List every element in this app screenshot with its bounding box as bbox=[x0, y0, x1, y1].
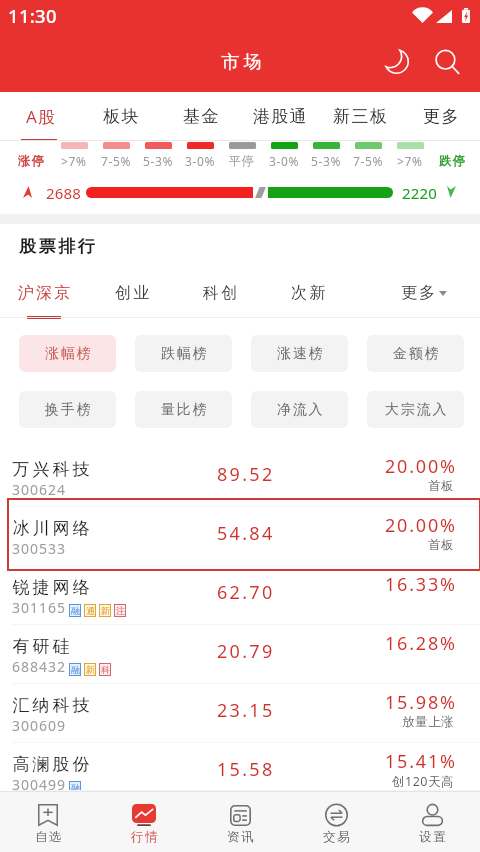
staticText: 11:30 bbox=[8, 3, 57, 28]
button[interactable]: 净流入 bbox=[251, 391, 348, 428]
staticText: 板块 bbox=[103, 106, 140, 127]
staticText: 科创 bbox=[203, 283, 240, 303]
button[interactable]: 涨幅榜 bbox=[19, 335, 116, 372]
staticText: 交易 bbox=[323, 829, 352, 845]
button[interactable]: 科创 bbox=[180, 271, 260, 315]
staticText: 高澜股份 bbox=[11, 754, 91, 775]
staticText: 行情 bbox=[131, 829, 160, 845]
button[interactable]: 冰川网络 bbox=[0, 507, 480, 566]
button[interactable]: 有研硅 bbox=[0, 625, 480, 684]
staticText: 平停 bbox=[229, 153, 255, 168]
staticText: 2688 bbox=[46, 183, 82, 203]
staticText: A股 bbox=[26, 105, 57, 128]
button[interactable]: 自选 bbox=[0, 791, 96, 852]
button[interactable]: 新三板 bbox=[320, 92, 400, 141]
staticText: 20.00% bbox=[385, 513, 457, 538]
staticText: 3-0% bbox=[269, 153, 299, 169]
staticText: 新 bbox=[86, 664, 95, 675]
staticText: 有研硅 bbox=[11, 636, 71, 657]
staticText: 汇纳科技 bbox=[11, 695, 91, 716]
button[interactable]: 金额榜 bbox=[367, 335, 464, 372]
button[interactable]: 资讯 bbox=[192, 791, 288, 852]
staticText: 涨幅榜 bbox=[45, 345, 93, 363]
staticText: 涨停 bbox=[18, 153, 45, 168]
button[interactable]: 板块 bbox=[80, 92, 160, 141]
staticText: 通 bbox=[86, 605, 95, 616]
staticText: 89.52 bbox=[217, 462, 275, 487]
staticText: 688432 bbox=[12, 657, 67, 676]
staticText: 15.98% bbox=[385, 690, 457, 715]
staticText: 5-3% bbox=[311, 153, 341, 169]
staticText: 300624 bbox=[12, 480, 67, 499]
staticText: 更多 bbox=[423, 106, 460, 127]
staticText: 20.00% bbox=[385, 454, 457, 479]
staticText: 62.70 bbox=[217, 580, 275, 605]
staticText: 基金 bbox=[183, 106, 220, 127]
staticText: 23.15 bbox=[217, 698, 275, 723]
staticText: 16.33% bbox=[385, 572, 457, 597]
staticText: 54.84 bbox=[217, 521, 275, 546]
button[interactable]: 万兴科技 bbox=[0, 448, 480, 507]
staticText: 首板 bbox=[428, 478, 454, 494]
button[interactable]: 锐捷网络 bbox=[0, 566, 480, 625]
button[interactable]: 创业 bbox=[92, 271, 172, 315]
staticText: 次新 bbox=[291, 283, 328, 303]
staticText: 涨速榜 bbox=[277, 345, 325, 363]
staticText: 港股通 bbox=[253, 106, 309, 127]
button[interactable]: 大宗流入 bbox=[367, 391, 464, 428]
staticText: 5-3% bbox=[143, 153, 173, 169]
button[interactable]: 交易 bbox=[288, 791, 384, 852]
staticText: 金额榜 bbox=[393, 345, 441, 363]
button[interactable]: 更多 bbox=[383, 271, 463, 315]
button[interactable]: Search bbox=[424, 39, 469, 84]
staticText: 量比榜 bbox=[161, 401, 209, 419]
staticText: 换手榜 bbox=[45, 401, 93, 419]
staticText: 资讯 bbox=[227, 829, 256, 845]
button[interactable]: Night mode bbox=[374, 39, 419, 84]
staticText: 注 bbox=[116, 605, 125, 616]
button[interactable]: A股 bbox=[0, 92, 80, 141]
button[interactable]: 行情 bbox=[96, 791, 192, 852]
staticText: 万兴科技 bbox=[11, 459, 91, 480]
staticText: 跌幅榜 bbox=[161, 345, 209, 363]
staticText: 更多 bbox=[400, 283, 436, 303]
staticText: >7% bbox=[397, 153, 423, 169]
staticText: 放量上涨 bbox=[402, 714, 454, 730]
button[interactable]: 次新 bbox=[268, 271, 348, 315]
button[interactable]: 更多 bbox=[400, 92, 480, 141]
button[interactable]: 基金 bbox=[160, 92, 240, 141]
staticText: 融 bbox=[71, 605, 80, 616]
staticText: 301165 bbox=[12, 598, 67, 617]
button[interactable]: 设置 bbox=[384, 791, 480, 852]
staticText: 科 bbox=[101, 664, 110, 675]
staticText: 融 bbox=[71, 664, 80, 675]
staticText: 300533 bbox=[12, 539, 67, 558]
staticText: 300609 bbox=[12, 716, 67, 735]
staticText: 锐捷网络 bbox=[11, 577, 91, 598]
button[interactable]: 沪深京 bbox=[4, 271, 84, 315]
staticText: 首板 bbox=[428, 537, 454, 553]
staticText: 16.28% bbox=[385, 631, 457, 656]
staticText: 大宗流入 bbox=[385, 401, 449, 419]
staticText: 20.79 bbox=[217, 639, 275, 664]
staticText: 新三板 bbox=[333, 106, 389, 127]
staticText: 15.58 bbox=[217, 757, 275, 782]
button[interactable]: 汇纳科技 bbox=[0, 684, 480, 743]
staticText: 冰川网络 bbox=[11, 518, 91, 539]
staticText: 2220 bbox=[402, 183, 438, 203]
staticText: 7-5% bbox=[101, 153, 131, 169]
button[interactable]: 高澜股份 bbox=[0, 743, 480, 791]
staticText: 市场 bbox=[219, 51, 264, 74]
button[interactable]: 涨速榜 bbox=[251, 335, 348, 372]
staticText: 7-5% bbox=[353, 153, 383, 169]
staticText: 跌停 bbox=[439, 153, 466, 168]
staticText: 股票排行 bbox=[18, 236, 96, 257]
staticText: 沪深京 bbox=[18, 283, 73, 303]
staticText: >7% bbox=[61, 153, 87, 169]
button[interactable]: 量比榜 bbox=[135, 391, 232, 428]
staticText: 创业 bbox=[115, 283, 152, 303]
button[interactable]: 港股通 bbox=[240, 92, 320, 141]
staticText: 3-0% bbox=[185, 153, 215, 169]
button[interactable]: 换手榜 bbox=[19, 391, 116, 428]
button[interactable]: 跌幅榜 bbox=[135, 335, 232, 372]
